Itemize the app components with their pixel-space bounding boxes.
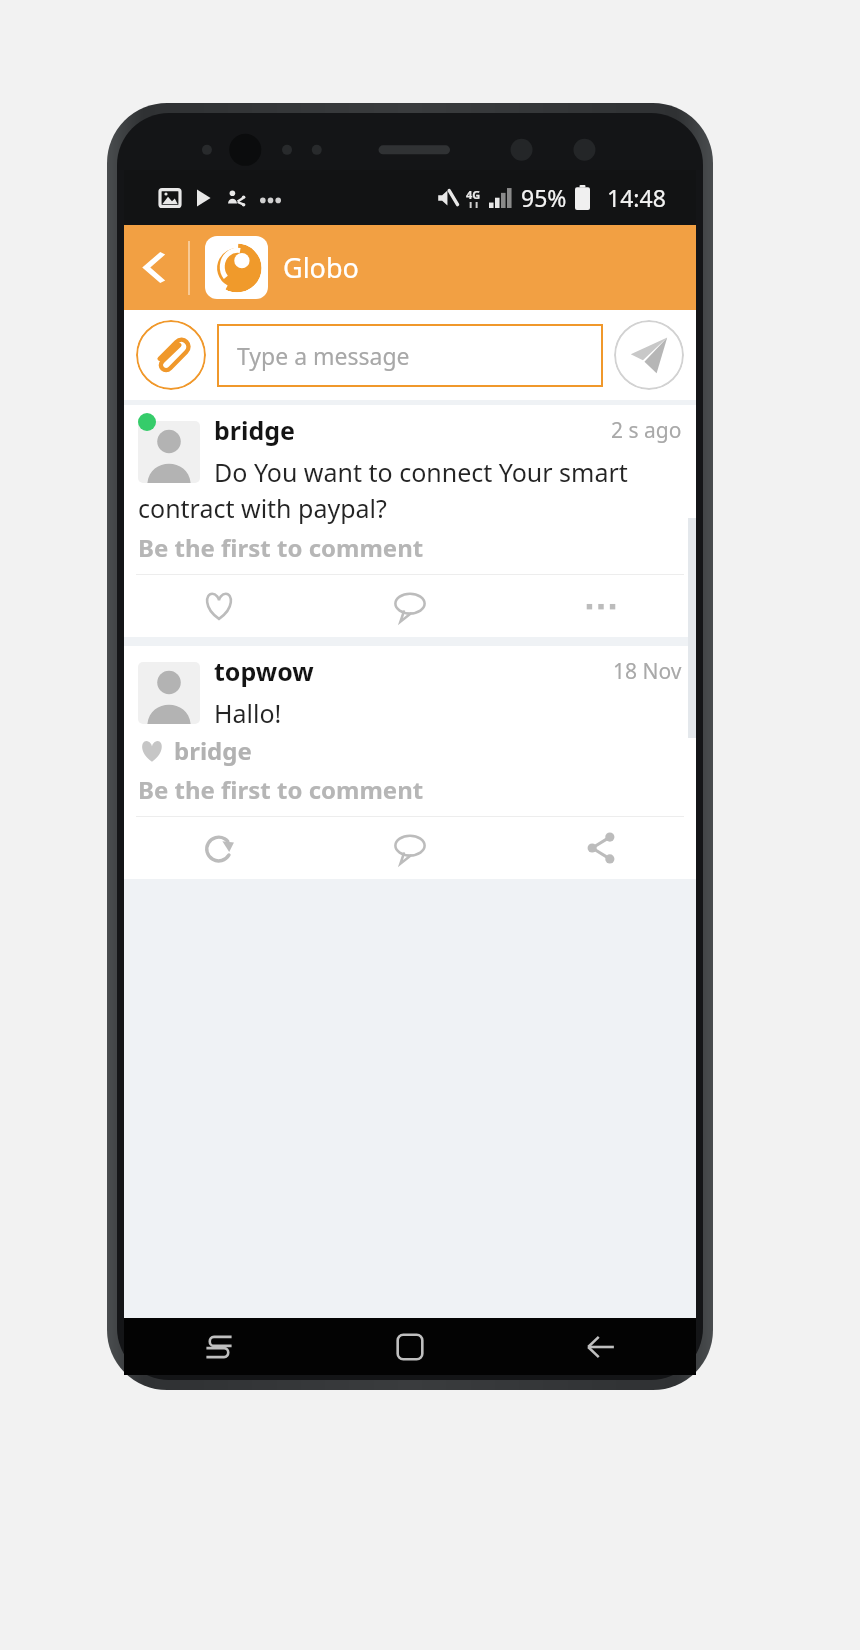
- staticText: Type a message: [237, 340, 410, 371]
- button[interactable]: Globo: [205, 236, 268, 299]
- button[interactable]: Share: [505, 817, 696, 879]
- button[interactable]: bridge: [124, 405, 696, 637]
- button[interactable]: Back: [505, 1318, 696, 1375]
- staticText: contract with paypal?: [138, 491, 387, 525]
- button[interactable]: More options: [505, 575, 696, 637]
- staticText: Do You want to connect Your smart: [214, 455, 628, 489]
- staticText: 95%: [521, 182, 567, 213]
- staticText: Hallo!: [214, 696, 282, 730]
- button[interactable]: Repost: [124, 817, 314, 879]
- staticText: bridge: [214, 413, 295, 447]
- staticText: 4G: [466, 187, 481, 202]
- button[interactable]: Type a message: [217, 324, 603, 387]
- button[interactable]: Attach file: [136, 320, 206, 390]
- staticText: Be the first to comment: [138, 773, 424, 806]
- button[interactable]: Recent apps: [124, 1318, 314, 1375]
- button[interactable]: Back: [124, 225, 188, 310]
- staticText: Be the first to comment: [138, 531, 424, 564]
- staticText: bridge: [174, 734, 252, 767]
- button[interactable]: topwow: [124, 646, 696, 879]
- button[interactable]: Like: [124, 575, 314, 637]
- staticText: 18 Nov: [613, 657, 682, 686]
- staticText: topwow: [214, 654, 314, 688]
- button[interactable]: Comment: [314, 817, 505, 879]
- staticText: Globo: [283, 249, 359, 286]
- button[interactable]: Comment: [314, 575, 505, 637]
- button[interactable]: Send: [614, 320, 684, 390]
- staticText: 14:48: [607, 182, 666, 213]
- button[interactable]: Home: [314, 1318, 505, 1375]
- staticText: 2 s ago: [611, 416, 682, 445]
